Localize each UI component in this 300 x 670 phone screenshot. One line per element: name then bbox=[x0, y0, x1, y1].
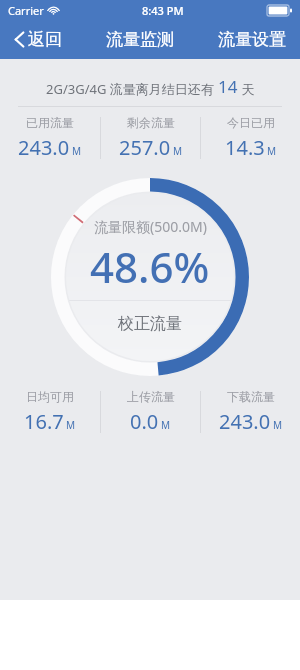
staticText: 天 bbox=[238, 80, 255, 98]
button[interactable]: 已用流量 bbox=[0, 115, 100, 161]
staticText: 0.0 bbox=[130, 408, 159, 435]
staticText: 流量设置 bbox=[218, 29, 286, 50]
staticText: 校正流量 bbox=[118, 314, 182, 334]
staticText: 上传流量 bbox=[127, 389, 175, 404]
staticText: 返回 bbox=[28, 29, 62, 50]
button[interactable]: 今日已用 bbox=[201, 115, 300, 161]
button[interactable]: Back bbox=[10, 25, 66, 54]
staticText: M bbox=[273, 418, 283, 432]
staticText: 流量限额(500.0M) bbox=[94, 217, 207, 236]
staticText: 8:43 PM bbox=[142, 3, 184, 18]
staticText: Carrier bbox=[8, 3, 44, 18]
staticText: M bbox=[161, 418, 171, 432]
staticText: 48.6% bbox=[90, 238, 210, 295]
staticText: 14.3 bbox=[225, 134, 265, 161]
button[interactable]: 校正流量 bbox=[66, 301, 234, 361]
staticText: 16.7 bbox=[24, 408, 64, 435]
staticText: 今日已用 bbox=[227, 115, 275, 130]
staticText: 下载流量 bbox=[227, 389, 275, 404]
staticText: M bbox=[66, 418, 76, 432]
staticText: 243.0 bbox=[18, 134, 70, 161]
other: Back bbox=[14, 30, 25, 49]
staticText: 14 bbox=[218, 75, 238, 98]
staticText: M bbox=[173, 144, 183, 158]
button[interactable]: 下载流量 bbox=[201, 389, 300, 435]
staticText: 243.0 bbox=[219, 408, 271, 435]
staticText: 日均可用 bbox=[26, 389, 74, 404]
staticText: M bbox=[267, 144, 277, 158]
staticText: 已用流量 bbox=[26, 115, 74, 130]
button[interactable]: 流量设置 bbox=[214, 25, 290, 54]
staticText: 流量监测 bbox=[106, 29, 174, 50]
button[interactable]: 剩余流量 bbox=[101, 115, 200, 161]
staticText: M bbox=[72, 144, 82, 158]
staticText: 剩余流量 bbox=[127, 115, 175, 130]
staticText: 2G/3G/4G 流量离月结日还有 bbox=[46, 80, 218, 98]
staticText: 257.0 bbox=[119, 134, 171, 161]
button[interactable]: 上传流量 bbox=[101, 389, 200, 435]
button[interactable]: 日均可用 bbox=[0, 389, 100, 435]
